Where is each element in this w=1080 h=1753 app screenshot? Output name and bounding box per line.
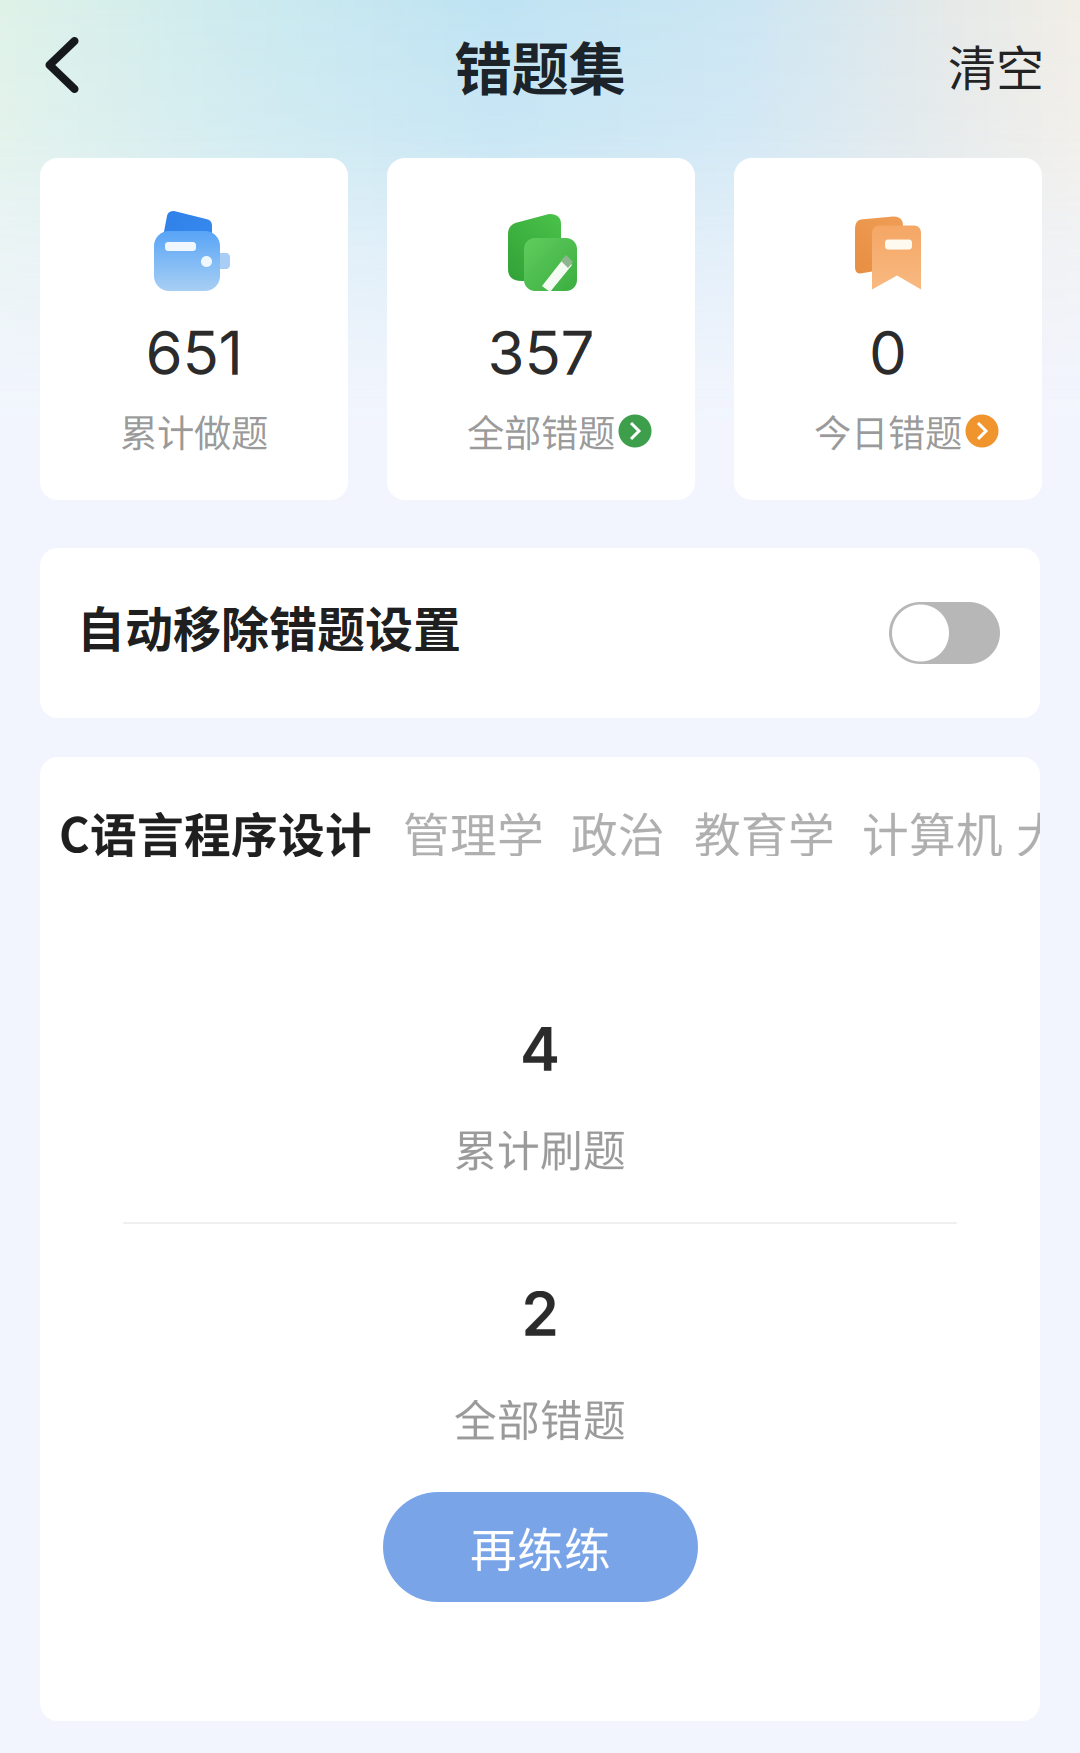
staticText: 2 (521, 1278, 558, 1350)
staticText: 357 (487, 317, 594, 389)
button[interactable]: 357 (387, 158, 695, 500)
staticText: 全部错题 (454, 1387, 626, 1449)
staticText: 4 (520, 1013, 560, 1085)
button[interactable]: 大 (1016, 806, 1063, 858)
button[interactable]: 自动移除错题设置 (40, 548, 1040, 718)
button[interactable]: 清空 (936, 15, 1056, 115)
staticText: 自动移除错题设置 (77, 591, 461, 661)
staticText: 管理学 (403, 798, 544, 866)
button[interactable]: Back (12, 15, 112, 115)
button[interactable]: 0 (734, 158, 1042, 500)
button[interactable]: 政治 (571, 806, 665, 858)
button[interactable]: 教育学 (694, 806, 835, 858)
staticText: 再练练 (470, 1513, 611, 1581)
staticText: 今日错题 (814, 404, 962, 458)
button[interactable]: C语言程序设计 (59, 806, 372, 858)
staticText: 计算机 (862, 798, 1003, 866)
staticText: 大 (1016, 798, 1063, 866)
staticText: 全部错题 (467, 404, 615, 458)
button[interactable]: 651 (40, 158, 348, 500)
staticText: 651 (145, 317, 242, 389)
staticText: C语言程序设计 (59, 798, 372, 866)
staticText: 清空 (948, 30, 1044, 100)
button[interactable]: 计算机 (862, 806, 1003, 858)
staticText: 政治 (571, 798, 665, 866)
button[interactable]: 管理学 (403, 806, 544, 858)
staticText: 累计刷题 (454, 1117, 626, 1179)
staticText: 累计做题 (120, 404, 268, 458)
staticText: 错题集 (454, 23, 625, 106)
staticText: 0 (869, 317, 907, 389)
button[interactable]: 再练练 (383, 1492, 698, 1602)
staticText: 教育学 (694, 798, 835, 866)
